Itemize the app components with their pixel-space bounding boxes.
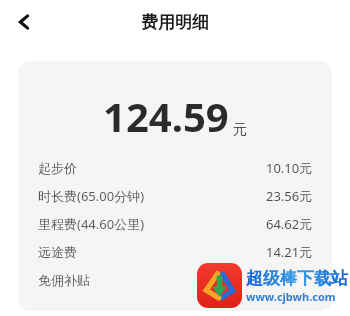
staticText: 时长费(65.00分钟)	[38, 187, 145, 205]
staticText: 超级棒下载站	[246, 268, 348, 289]
button[interactable]: 时长费(65.00分钟)	[38, 182, 313, 210]
button[interactable]: 远途费	[38, 238, 313, 266]
staticText: 里程费(44.60公里)	[38, 215, 145, 233]
button[interactable]: 起步价	[38, 154, 313, 182]
staticText: 14.21元	[266, 243, 313, 261]
staticText: 10.10元	[266, 159, 313, 177]
staticText: 费用明细	[141, 12, 209, 33]
staticText: 起步价	[38, 160, 77, 176]
staticText: 元	[233, 121, 247, 139]
staticText: 124.59	[103, 89, 229, 143]
staticText: 免佣补贴	[38, 272, 90, 288]
staticText: 64.62元	[266, 215, 313, 233]
staticText: 23.56元	[266, 187, 313, 205]
button[interactable]: 免佣补贴	[38, 266, 313, 294]
button[interactable]: Back	[6, 4, 42, 40]
staticText: www.cjbwh.com	[246, 289, 336, 304]
staticText: 远途费	[38, 244, 77, 260]
button[interactable]: 里程费(44.60公里)	[38, 210, 313, 238]
